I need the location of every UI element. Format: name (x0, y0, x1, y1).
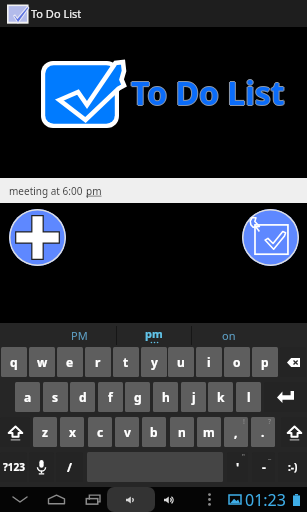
button[interactable]: v (115, 417, 139, 447)
button[interactable]: Back (8, 487, 31, 512)
staticText: l (247, 389, 251, 405)
button[interactable]: c (88, 417, 112, 447)
button[interactable]: ?123 (0, 452, 27, 482)
button[interactable]: Menu (198, 487, 221, 512)
staticText: 01:23 (245, 489, 286, 511)
button[interactable]: z (33, 417, 57, 447)
button[interactable]: n (170, 417, 194, 447)
button[interactable]: Saved tasks (242, 209, 299, 266)
staticText: v (124, 424, 131, 440)
staticText: w (37, 354, 48, 370)
staticText: u (177, 354, 185, 370)
staticText: m (203, 424, 215, 440)
staticText: o (233, 354, 241, 370)
staticText: , (234, 424, 238, 440)
button[interactable]: Shift (0, 417, 30, 447)
button[interactable]: Enter (264, 382, 307, 412)
staticText: meeting at 6:00 (9, 184, 86, 198)
button[interactable]: Volume up (158, 487, 181, 512)
staticText: q (10, 354, 18, 370)
button[interactable]: on (192, 323, 266, 347)
staticText: d (79, 389, 87, 405)
button[interactable]: a (15, 382, 40, 412)
staticText: pm (86, 184, 102, 198)
button[interactable]: Backspace (280, 347, 306, 377)
staticText: ' (236, 459, 240, 475)
button[interactable]: w (29, 347, 55, 377)
staticText: pm (145, 326, 163, 341)
staticText: " (242, 452, 245, 462)
button[interactable]: s (43, 382, 68, 412)
staticText: s (52, 389, 59, 405)
button[interactable]: Home (45, 487, 68, 512)
staticText: j (192, 389, 196, 405)
staticText: To Do List (131, 71, 285, 115)
staticText: ! (243, 417, 245, 427)
button[interactable]: d (70, 382, 95, 412)
staticText: ? (268, 417, 272, 427)
staticText: z (42, 424, 48, 440)
button[interactable]: :-) (278, 452, 307, 482)
button[interactable]: Add task (9, 209, 66, 266)
button[interactable]: Voice input (29, 452, 54, 482)
button[interactable]: b (142, 417, 166, 447)
staticText: p (261, 354, 269, 370)
button[interactable]: j (181, 382, 206, 412)
button[interactable]: x (60, 417, 84, 447)
staticText: x (69, 424, 76, 440)
staticText: a (24, 389, 32, 405)
staticText: n (178, 424, 186, 440)
staticText: - (262, 459, 266, 475)
staticText: b (150, 424, 158, 440)
staticText: r (95, 354, 101, 370)
button[interactable]: Volume down (120, 487, 143, 512)
button[interactable]: i (196, 347, 222, 377)
staticText: g (134, 389, 142, 405)
button[interactable]: r (85, 347, 111, 377)
staticText: t (123, 354, 129, 370)
button[interactable]: l (236, 382, 261, 412)
staticText: :-) (288, 460, 298, 474)
button[interactable]: f (98, 382, 123, 412)
staticText: To Do List (131, 70, 285, 114)
button[interactable]: PM (42, 323, 116, 347)
button[interactable]: - (252, 452, 275, 482)
staticText: . (261, 424, 265, 440)
button[interactable]: Shift (281, 417, 307, 447)
button[interactable]: h (153, 382, 178, 412)
button[interactable]: , (224, 417, 248, 447)
button[interactable]: m (197, 417, 221, 447)
staticText: h (162, 389, 170, 405)
button[interactable]: Recents (81, 487, 104, 512)
button[interactable]: q (1, 347, 27, 377)
staticText: _ (268, 452, 272, 462)
staticText: To Do List (131, 72, 285, 116)
button[interactable]: ' (227, 452, 248, 482)
staticText: k (217, 389, 225, 405)
staticText: on (222, 328, 236, 343)
button[interactable]: p (252, 347, 278, 377)
button[interactable]: y (141, 347, 167, 377)
staticText: To Do List (132, 71, 286, 115)
button[interactable]: / (56, 452, 83, 482)
button[interactable]: t (113, 347, 139, 377)
staticText: c (97, 424, 104, 440)
button[interactable]: meeting at 6:00 (0, 178, 307, 203)
button[interactable]: . (251, 417, 275, 447)
button[interactable]: e (57, 347, 83, 377)
button[interactable]: g (125, 382, 150, 412)
staticText: To Do List (130, 71, 284, 115)
staticText: PM (71, 328, 88, 343)
button[interactable]: o (224, 347, 250, 377)
button[interactable]: u (168, 347, 194, 377)
staticText: e (66, 354, 74, 370)
staticText: i (207, 354, 211, 370)
staticText: To Do List (31, 6, 82, 21)
staticText: / (67, 459, 72, 475)
staticText: f (108, 389, 113, 405)
staticText: ?123 (3, 460, 25, 474)
button[interactable]: pm (117, 323, 191, 347)
button[interactable]: k (208, 382, 233, 412)
staticText: y (151, 354, 158, 370)
